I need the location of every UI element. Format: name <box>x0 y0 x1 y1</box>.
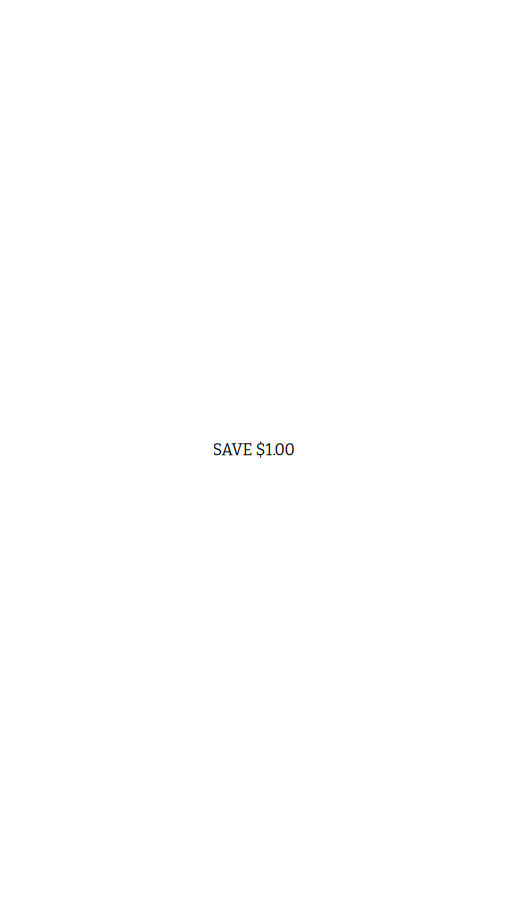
staticText: SAVE $1.00 <box>212 440 294 460</box>
